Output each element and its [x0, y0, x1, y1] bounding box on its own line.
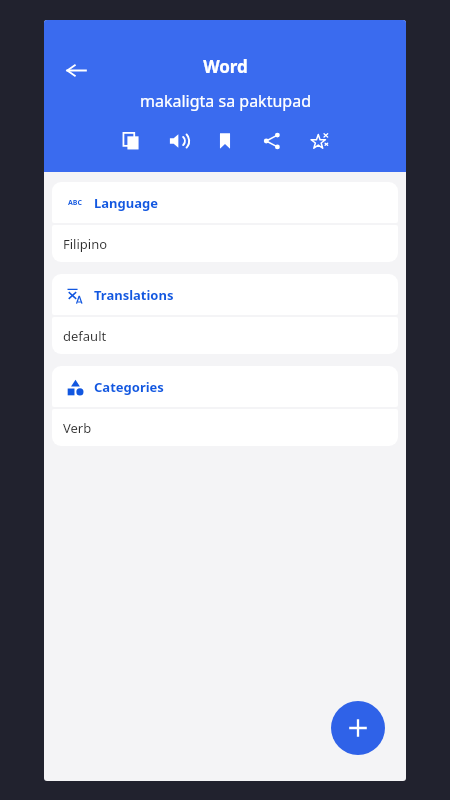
staticText: makaligta sa paktupad	[140, 90, 311, 112]
staticText: Verb	[63, 419, 92, 437]
button[interactable]: Verb	[52, 409, 398, 446]
button[interactable]: Copy	[114, 124, 148, 158]
button[interactable]: Filipino	[52, 225, 398, 262]
button[interactable]: default	[52, 317, 398, 354]
button[interactable]: ABC	[52, 182, 398, 223]
button[interactable]: Share	[255, 124, 289, 158]
staticText: default	[63, 327, 107, 345]
button[interactable]: Bookmark	[208, 124, 242, 158]
button[interactable]: Play pronunciation	[161, 124, 195, 158]
button[interactable]: Favorite	[302, 124, 336, 158]
staticText: Translations	[94, 286, 174, 304]
button[interactable]: Back	[56, 50, 96, 90]
button[interactable]: Categories	[52, 366, 398, 407]
staticText: Language	[94, 194, 158, 212]
button[interactable]: Add	[331, 701, 385, 755]
staticText: Categories	[94, 378, 164, 396]
button[interactable]: Translations	[52, 274, 398, 315]
staticText: ABC	[68, 198, 82, 208]
staticText: Word	[203, 55, 248, 78]
staticText: Filipino	[63, 235, 108, 253]
